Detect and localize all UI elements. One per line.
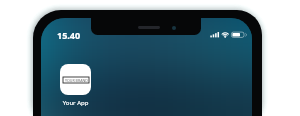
button[interactable]: YOUR BRAND: [60, 64, 91, 95]
staticText: YOUR BRAND: [65, 78, 88, 83]
other: Signal, Wi-Fi and battery status: [210, 32, 247, 38]
staticText: Your App: [58, 99, 93, 107]
staticText: 15.40: [57, 29, 81, 41]
